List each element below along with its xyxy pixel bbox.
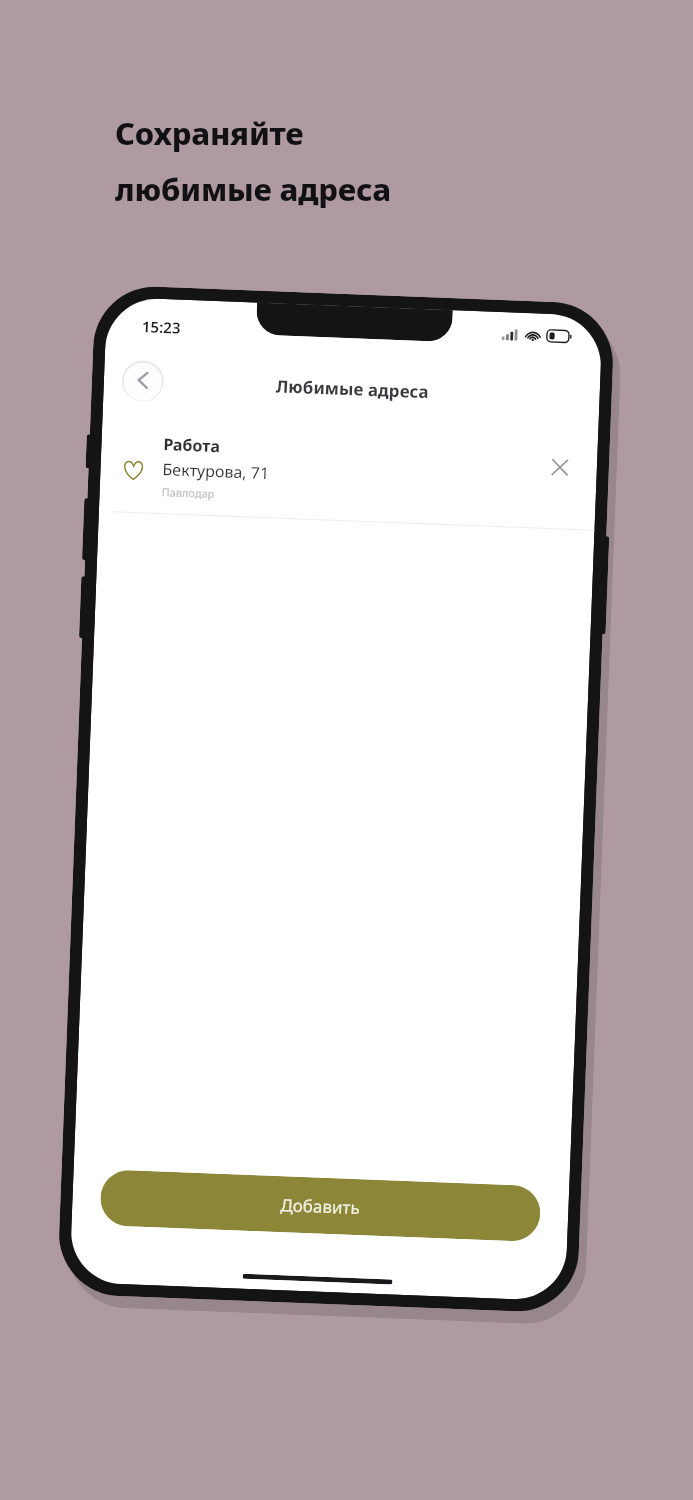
staticText: 15:23 bbox=[142, 316, 181, 338]
staticText: Бектурова, 71 bbox=[162, 458, 270, 484]
staticText: любимые адреса bbox=[115, 168, 391, 210]
staticText: Сохраняйте bbox=[115, 112, 304, 154]
button[interactable]: Работа bbox=[99, 419, 598, 530]
staticText: Любимые адреса bbox=[275, 374, 429, 403]
staticText: Работа bbox=[163, 433, 221, 457]
button[interactable]: Back bbox=[121, 358, 165, 402]
staticText: Павлодар bbox=[161, 484, 215, 501]
button[interactable]: Remove address bbox=[544, 452, 575, 483]
button[interactable]: Добавить bbox=[99, 1169, 541, 1242]
staticText: Добавить bbox=[280, 1193, 361, 1219]
